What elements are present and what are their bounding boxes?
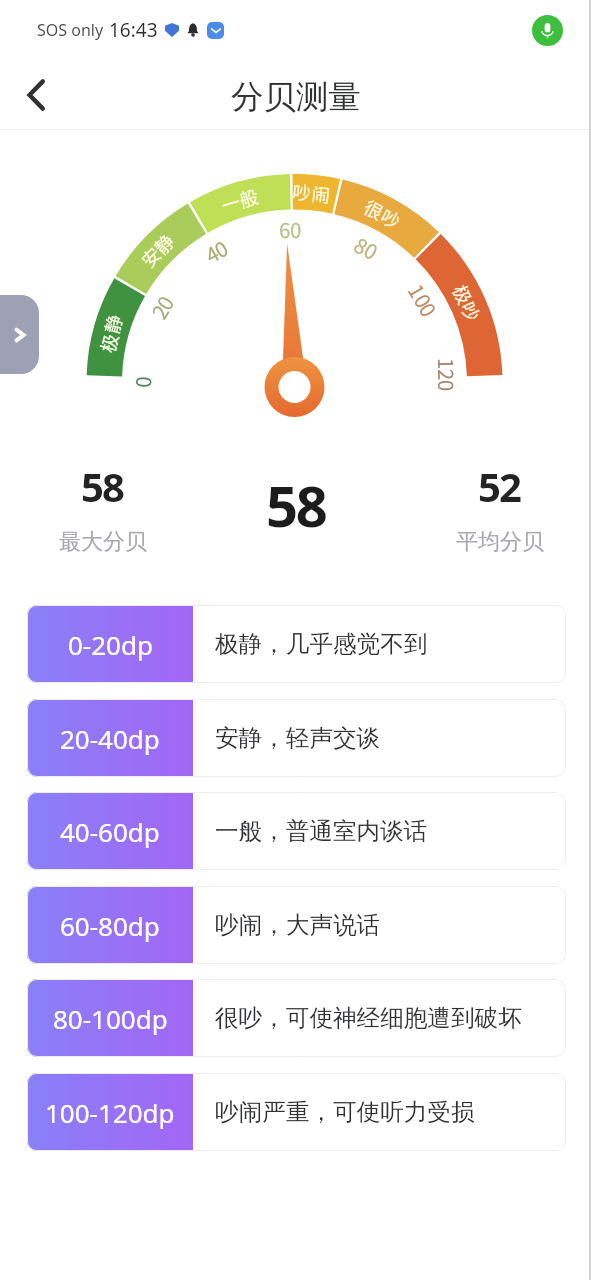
staticText: 平均分贝 <box>456 528 544 556</box>
staticText: 40-60dp <box>60 814 160 849</box>
staticText: 20-40dp <box>60 721 160 756</box>
button[interactable]: 40-60dp <box>27 792 566 870</box>
staticText: 52 <box>478 459 521 513</box>
staticText: 最大分贝 <box>59 528 147 556</box>
staticText: 0-20dp <box>68 627 153 662</box>
button[interactable]: 80-100dp <box>27 979 566 1057</box>
staticText: 安静，轻声交谈 <box>215 723 381 753</box>
staticText: 分贝测量 <box>231 77 361 118</box>
staticText: 很吵，可使神经细胞遭到破坏 <box>215 1003 522 1033</box>
staticText: 80-100dp <box>53 1001 168 1036</box>
button[interactable]: 100-120dp <box>27 1073 566 1151</box>
staticText: 吵闹，大声说话 <box>215 910 381 940</box>
button[interactable]: Microphone recording <box>532 15 563 46</box>
staticText: 一般，普通室内谈话 <box>215 816 428 846</box>
staticText: 100-120dp <box>45 1095 175 1130</box>
staticText: 极静，几乎感觉不到 <box>215 629 428 659</box>
button[interactable]: Back <box>12 71 60 119</box>
button[interactable]: 0-20dp <box>27 605 566 683</box>
staticText: 58 <box>266 467 326 543</box>
button[interactable]: Expand panel <box>0 295 39 374</box>
staticText: 60-80dp <box>60 908 160 943</box>
staticText: SOS only <box>37 19 104 41</box>
staticText: 58 <box>81 459 124 513</box>
button[interactable]: 20-40dp <box>27 699 566 777</box>
button[interactable]: 60-80dp <box>27 886 566 964</box>
staticText: 16:43 <box>109 17 158 43</box>
staticText: 吵闹严重，可使听力受损 <box>215 1097 475 1127</box>
